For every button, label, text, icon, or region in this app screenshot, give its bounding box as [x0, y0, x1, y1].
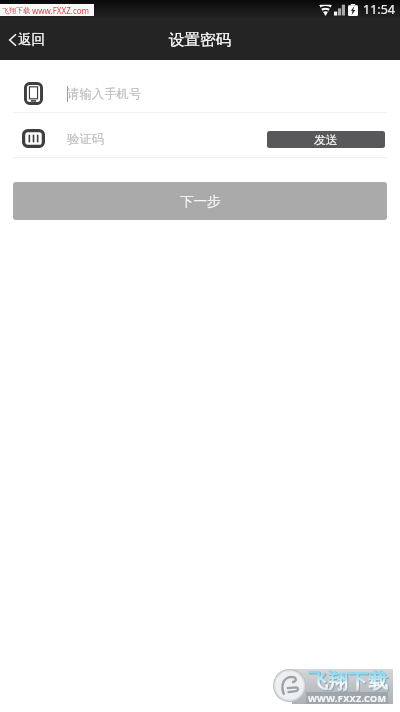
staticText: 发送 — [314, 132, 338, 147]
button[interactable]: 下一步 — [13, 182, 387, 220]
staticText: 飞翔下载 — [308, 669, 388, 694]
staticText: 飞翔下载 — [309, 670, 389, 695]
staticText: 设置密码 — [169, 30, 231, 50]
staticText: 验证码 — [67, 131, 105, 147]
staticText: 飞翔下载 — [2, 6, 30, 15]
staticText: 返回 — [18, 31, 45, 48]
button[interactable]: 发送 — [267, 131, 385, 148]
staticText: 11:54 — [363, 1, 395, 18]
button[interactable]: 验证码 — [0, 113, 267, 157]
button[interactable]: 返回 — [0, 23, 59, 56]
staticText: www.FXXZ.com — [32, 5, 90, 16]
button[interactable]: 请输入手机号 — [0, 68, 400, 112]
staticText: WWW.FXXZ.COM — [308, 692, 387, 704]
staticText: 下一步 — [180, 193, 221, 210]
staticText: 请输入手机号 — [67, 86, 142, 102]
